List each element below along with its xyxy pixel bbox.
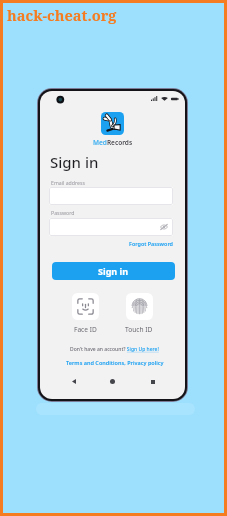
staticText: Touch ID: [125, 325, 153, 334]
button[interactable]: Forgot Password: [129, 240, 173, 247]
staticText: Sign in: [50, 152, 99, 172]
other: Show password: [160, 223, 168, 231]
button[interactable]: Touch ID: [125, 293, 153, 334]
staticText: Password: [51, 209, 75, 216]
staticText: hack-cheat.org: [7, 5, 117, 25]
staticText: Sign in: [98, 265, 129, 277]
button[interactable]: Face ID: [72, 293, 99, 334]
button[interactable]: Home: [106, 376, 119, 387]
button[interactable]: Sign in: [52, 262, 175, 280]
staticText: MedRecords: [93, 138, 133, 147]
button[interactable]: Back: [67, 376, 80, 387]
staticText: Face ID: [74, 325, 97, 334]
button[interactable]: Recents: [146, 376, 159, 387]
staticText: Email address: [51, 179, 85, 186]
button[interactable]: Don't have an account? Sign Up here!: [70, 346, 159, 353]
button[interactable]: [49, 187, 173, 205]
button[interactable]: Show password: [49, 218, 173, 236]
button[interactable]: Terms and Conditions, Privacy policy: [66, 359, 164, 366]
